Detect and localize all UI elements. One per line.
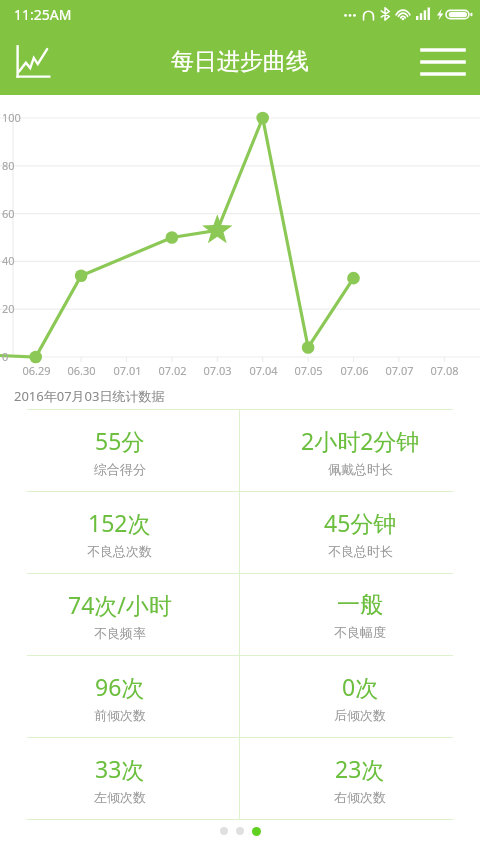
- staticText: 07.02: [158, 363, 187, 378]
- staticText: 07.07: [385, 363, 414, 378]
- staticText: 60: [2, 206, 15, 221]
- staticText: 80: [2, 158, 15, 173]
- button[interactable]: 33次: [0, 738, 239, 819]
- button[interactable]: 74次/小时: [0, 574, 239, 655]
- staticText: 不良总时长: [328, 543, 393, 559]
- staticText: 06.29: [22, 363, 51, 378]
- button[interactable]: Menu: [420, 39, 466, 85]
- button[interactable]: 45分钟: [240, 492, 480, 573]
- staticText: 综合得分: [94, 461, 146, 477]
- button[interactable]: 一般: [240, 574, 480, 655]
- button[interactable]: 0次: [240, 656, 480, 737]
- staticText: 06.30: [67, 363, 96, 378]
- staticText: 40: [2, 253, 15, 268]
- staticText: 0次: [342, 671, 379, 702]
- staticText: 74次/小时: [68, 589, 172, 620]
- staticText: 不良幅度: [334, 624, 386, 640]
- button[interactable]: Chart: [12, 42, 52, 82]
- staticText: 55分: [95, 425, 145, 456]
- button[interactable]: 2小时2分钟: [240, 410, 480, 491]
- staticText: 0: [2, 349, 9, 364]
- staticText: 右倾次数: [334, 789, 386, 805]
- button[interactable]: 152次: [0, 492, 239, 573]
- staticText: 07.05: [294, 363, 323, 378]
- button[interactable]: 55分: [0, 410, 239, 491]
- staticText: 2016年07月03日统计数据: [14, 387, 165, 405]
- staticText: 07.04: [249, 363, 278, 378]
- staticText: 后倾次数: [334, 707, 386, 723]
- staticText: 45分钟: [324, 507, 397, 538]
- staticText: 不良总次数: [87, 543, 152, 559]
- staticText: 23次: [335, 753, 385, 784]
- staticText: 前倾次数: [94, 707, 146, 723]
- staticText: 20: [2, 301, 15, 316]
- staticText: 每日进步曲线: [171, 47, 309, 76]
- staticText: 152次: [88, 507, 151, 538]
- staticText: 不良频率: [94, 625, 146, 641]
- staticText: 07.08: [430, 363, 459, 378]
- staticText: 11:25AM: [14, 5, 72, 24]
- button[interactable]: 23次: [240, 738, 480, 819]
- staticText: 100: [2, 110, 21, 125]
- staticText: 2小时2分钟: [301, 425, 420, 456]
- staticText: 佩戴总时长: [328, 461, 393, 477]
- staticText: 33次: [95, 753, 145, 784]
- staticText: 左倾次数: [94, 789, 146, 805]
- staticText: 07.03: [203, 363, 232, 378]
- staticText: 07.06: [340, 363, 369, 378]
- staticText: 07.01: [113, 363, 142, 378]
- staticText: 一般: [337, 590, 383, 619]
- staticText: 96次: [95, 671, 145, 702]
- button[interactable]: 96次: [0, 656, 239, 737]
